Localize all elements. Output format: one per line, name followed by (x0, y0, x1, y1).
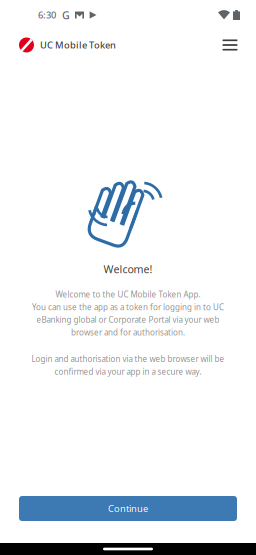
staticText: You can use the app as a token for loggi… (32, 302, 224, 312)
button[interactable]: Continue (19, 496, 237, 521)
staticText: G (62, 8, 70, 22)
button[interactable]: Menu (217, 32, 243, 58)
staticText: browser and for authorisation. (71, 327, 185, 338)
staticText: 6:30 (38, 9, 56, 21)
staticText: eBanking global or Corporate Portal via … (36, 314, 219, 325)
staticText: Welcome! (103, 262, 152, 276)
staticText: Continue (108, 502, 148, 515)
staticText: Login and authorisation via the web brow… (31, 354, 224, 364)
staticText: UC Mobile Token (40, 39, 116, 51)
staticText: confirmed via your app in a secure way. (54, 366, 201, 377)
staticText: Welcome to the UC Mobile Token App. (55, 289, 200, 300)
